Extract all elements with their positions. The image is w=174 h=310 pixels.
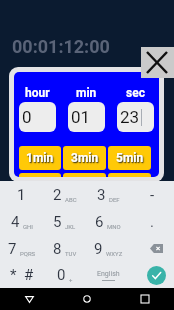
button[interactable]: Done (147, 266, 166, 285)
staticText: 4 (11, 213, 20, 231)
staticText: - (150, 186, 155, 204)
staticText: DEF (109, 196, 120, 203)
staticText: WXYZ (106, 250, 123, 257)
button[interactable]: Close (141, 47, 174, 78)
button[interactable]: - (130, 181, 174, 208)
button[interactable]: 0 (43, 262, 86, 288)
button[interactable]: 0 (19, 102, 56, 132)
staticText: MNO (107, 223, 121, 230)
button[interactable]: 2 (43, 181, 86, 208)
button[interactable]: * # (0, 262, 43, 288)
staticText: sec (126, 86, 145, 100)
button[interactable]: 1min (19, 146, 61, 170)
staticText: English (97, 270, 120, 278)
button[interactable]: 5 (43, 208, 86, 235)
button[interactable]: 10min (19, 173, 61, 177)
staticText: GHI (23, 223, 33, 230)
staticText: ABC (65, 196, 77, 203)
staticText: hour (25, 86, 50, 100)
button[interactable]: Recents (116, 288, 174, 310)
button[interactable]: 60min (108, 173, 151, 177)
staticText: 5min (116, 151, 144, 165)
staticText: min (76, 86, 97, 100)
staticText: 9 (94, 240, 103, 258)
staticText: 5 (53, 213, 62, 231)
button[interactable]: Done (130, 262, 174, 288)
button[interactable]: . (130, 208, 174, 235)
staticText: 1min (26, 151, 54, 165)
staticText: 01 (71, 107, 91, 127)
staticText: 0 (57, 266, 66, 284)
button[interactable]: 6 (86, 208, 130, 235)
button[interactable]: 3min (63, 146, 106, 170)
button[interactable]: 01 (68, 102, 105, 132)
button[interactable]: English (86, 262, 130, 288)
staticText: + (69, 276, 73, 283)
staticText: 6 (95, 213, 104, 231)
button[interactable]: 3 (86, 181, 130, 208)
button[interactable]: 23 (117, 102, 154, 132)
button[interactable]: Backspace (130, 235, 174, 262)
button[interactable]: 1 (0, 181, 43, 208)
staticText: 3min (71, 151, 99, 165)
staticText: 0 (22, 107, 32, 127)
staticText: 7 (8, 240, 17, 258)
staticText: 1 (17, 186, 26, 204)
staticText: * # (10, 266, 34, 284)
staticText: TUV (65, 250, 77, 257)
button[interactable]: Back (0, 288, 58, 310)
button[interactable]: 30min (63, 173, 106, 177)
button[interactable]: Home (58, 288, 116, 310)
staticText: 00:01:12:00 (12, 36, 110, 57)
button[interactable]: 5min (108, 146, 151, 170)
button[interactable]: 9 (86, 235, 130, 262)
button[interactable]: 4 (0, 208, 43, 235)
staticText: 3 (97, 186, 106, 204)
staticText: PQRS (20, 250, 36, 257)
staticText: JKL (65, 223, 76, 230)
staticText: 8 (53, 240, 62, 258)
button[interactable]: 8 (43, 235, 86, 262)
staticText: . (150, 213, 154, 231)
staticText: 2 (53, 186, 62, 204)
staticText: 23 (120, 107, 140, 127)
button[interactable]: 7 (0, 235, 43, 262)
other: Backspace (150, 244, 163, 253)
